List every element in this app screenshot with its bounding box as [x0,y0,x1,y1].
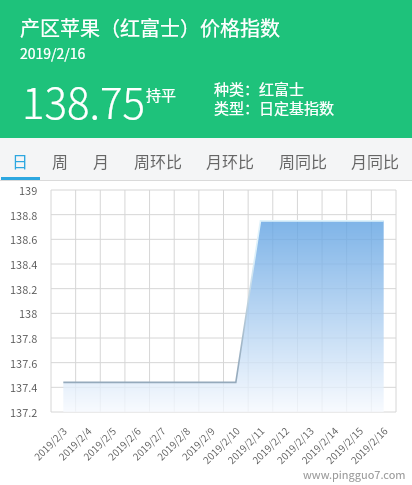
button[interactable]: 周同比 [279,141,328,180]
staticText: 2019/2/16 [20,43,86,63]
button[interactable]: 月 [93,141,110,180]
button[interactable]: 日 [12,141,29,180]
button[interactable]: 周 [52,141,69,180]
button[interactable]: 月环比 [206,141,255,180]
staticText: 周同比 [279,149,328,172]
staticText: 周 [52,149,69,172]
staticText: 月同比 [351,149,400,172]
staticText: 138.75 [22,70,145,131]
staticText: 月环比 [206,149,255,172]
button[interactable]: 周环比 [134,141,183,180]
staticText: 类型：日定基指数 [214,97,335,119]
staticText: 种类：红富士 [214,78,305,100]
staticText: 持平 [146,84,177,106]
staticText: 周环比 [134,149,183,172]
button[interactable]: 月同比 [351,141,400,180]
staticText: 产区苹果（红富士）价格指数 [20,13,280,42]
staticText: 日 [12,149,29,172]
staticText: 月 [93,149,110,172]
